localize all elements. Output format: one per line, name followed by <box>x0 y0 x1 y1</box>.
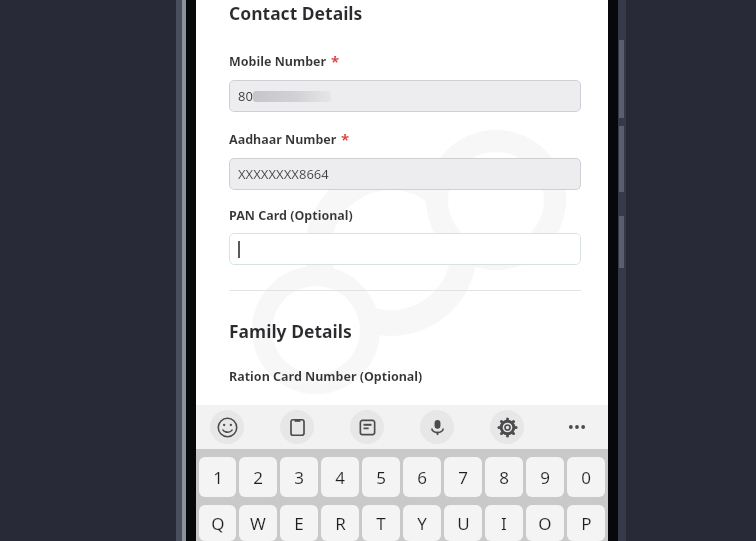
staticText: 2 <box>253 466 263 489</box>
button[interactable]: R <box>321 505 359 541</box>
button[interactable]: More options <box>560 410 594 444</box>
staticText: 1 <box>213 466 223 489</box>
button[interactable]: O <box>526 505 564 541</box>
staticText: Mobile Number <box>229 53 327 70</box>
button[interactable]: XXXXXXXX8664 <box>229 158 581 190</box>
button[interactable]: 6 <box>403 457 441 497</box>
button[interactable]: 2 <box>239 457 277 497</box>
button[interactable]: Emoji <box>210 410 244 444</box>
button[interactable]: 5 <box>362 457 400 497</box>
staticText: E <box>294 512 304 535</box>
staticText: PAN Card (Optional) <box>229 207 353 224</box>
staticText: W <box>250 512 266 535</box>
button[interactable]: 8 <box>485 457 523 497</box>
button[interactable]: I <box>485 505 523 541</box>
button[interactable]: Y <box>403 505 441 541</box>
staticText: XXXXXXXX8664 <box>238 165 329 183</box>
button[interactable]: Clipboard <box>280 410 314 444</box>
button[interactable]: Keyboard settings <box>490 410 524 444</box>
button[interactable] <box>229 233 581 265</box>
staticText: P <box>581 512 592 535</box>
button[interactable]: W <box>239 505 277 541</box>
staticText: 7 <box>458 466 468 489</box>
staticText: I <box>501 512 507 535</box>
button[interactable]: 0 <box>567 457 605 497</box>
button[interactable]: Q <box>199 505 236 541</box>
staticText: Q <box>211 512 225 535</box>
staticText: 4 <box>335 466 345 489</box>
staticText: 0 <box>581 466 591 489</box>
button[interactable]: 9 <box>526 457 564 497</box>
staticText: Contact Details <box>229 1 363 25</box>
staticText: Aadhaar Number <box>229 131 337 148</box>
button[interactable]: T <box>362 505 400 541</box>
staticText: Ration Card Number (Optional) <box>229 368 423 385</box>
staticText: * <box>341 129 350 149</box>
staticText: 3 <box>294 466 304 489</box>
button[interactable]: 80 <box>229 80 581 112</box>
button[interactable]: Sticker <box>350 410 384 444</box>
staticText: 80 <box>238 87 253 105</box>
staticText: 8 <box>499 466 509 489</box>
staticText: 6 <box>417 466 427 489</box>
button[interactable]: U <box>444 505 482 541</box>
button[interactable]: 7 <box>444 457 482 497</box>
button[interactable]: 1 <box>199 457 236 497</box>
button[interactable]: P <box>567 505 605 541</box>
button[interactable]: E <box>280 505 318 541</box>
button[interactable]: 4 <box>321 457 359 497</box>
staticText: * <box>331 51 340 71</box>
staticText: R <box>335 512 346 535</box>
button[interactable]: Voice input <box>420 410 454 444</box>
staticText: T <box>376 512 386 535</box>
staticText: U <box>457 512 470 535</box>
staticText: O <box>538 512 552 535</box>
staticText: Y <box>417 512 427 535</box>
button[interactable]: 3 <box>280 457 318 497</box>
staticText: Family Details <box>229 319 352 343</box>
staticText: 9 <box>540 466 550 489</box>
staticText: 5 <box>376 466 386 489</box>
